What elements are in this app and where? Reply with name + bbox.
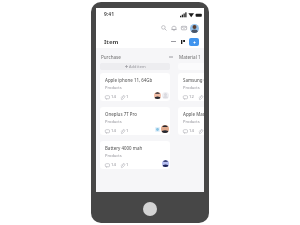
button[interactable]: Apple iphone 11, 64Gb xyxy=(100,73,170,101)
staticText: Item xyxy=(104,38,119,46)
button[interactable]: Add item xyxy=(100,63,170,70)
staticText: 1 xyxy=(126,128,129,134)
staticText: Apple Macbook Pro xyxy=(183,111,204,117)
button[interactable]: Battery 4000 mah xyxy=(100,141,170,169)
staticText: Purchase xyxy=(101,54,121,60)
staticText: 14 xyxy=(111,162,116,168)
staticText: 12 xyxy=(189,94,194,100)
button[interactable]: Notifications xyxy=(169,23,179,33)
staticText: Products xyxy=(105,85,122,90)
button[interactable]: Apple Macbook Pro xyxy=(178,107,204,135)
staticText: Samsung Galaxy S20 xyxy=(183,77,204,83)
button[interactable]: Board view xyxy=(178,37,187,46)
button[interactable]: Profile xyxy=(189,23,199,33)
staticText: Products xyxy=(183,119,200,124)
button[interactable]: Oneplus 7T Pro xyxy=(100,107,170,135)
staticText: 14 xyxy=(111,128,116,134)
staticText: Oneplus 7T Pro xyxy=(105,111,137,117)
button[interactable]: Search xyxy=(159,23,169,33)
staticText: Products xyxy=(105,119,122,124)
button[interactable]: Add item xyxy=(189,38,199,46)
staticText: Material 1 xyxy=(179,54,201,60)
button[interactable]: Collapse column xyxy=(168,54,174,60)
button[interactable]: Collapse xyxy=(169,37,178,46)
staticText: Products xyxy=(105,153,122,158)
staticText: Apple iphone 11, 64Gb xyxy=(105,77,153,83)
staticText: Products xyxy=(183,85,200,90)
staticText: 1 xyxy=(126,94,129,100)
staticText: 14 xyxy=(189,128,194,134)
button[interactable]: Samsung Galaxy S20 xyxy=(178,73,204,101)
staticText: 14 xyxy=(111,94,116,100)
staticText: 9:41 xyxy=(104,11,114,18)
staticText: Battery 4000 mah xyxy=(105,145,143,151)
button[interactable]: Messages xyxy=(179,23,189,33)
staticText: 1 xyxy=(126,162,129,168)
staticText: Add item xyxy=(129,64,146,69)
